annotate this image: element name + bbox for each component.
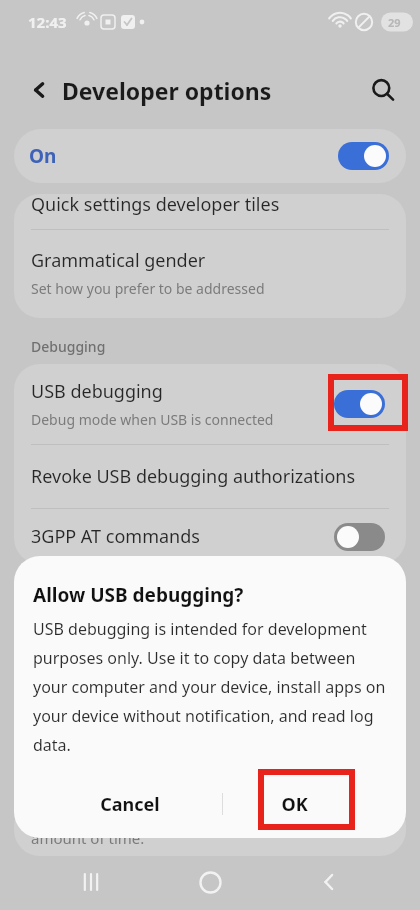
button[interactable]: Back xyxy=(301,854,357,910)
button[interactable]: OK xyxy=(214,776,374,832)
staticText: Grammatical gender xyxy=(31,248,206,273)
button[interactable]: Revoke USB debugging authorizations xyxy=(14,445,406,508)
button[interactable]: Back xyxy=(20,70,60,110)
staticText: Debug mode when USB is connected xyxy=(31,410,274,429)
staticText: Allow USB debugging? xyxy=(33,582,244,608)
button[interactable]: Cancel xyxy=(50,776,210,832)
staticText: Cancel xyxy=(100,792,160,817)
staticText: Developer options xyxy=(62,75,272,106)
staticText: OK xyxy=(281,792,308,817)
staticText: 29 xyxy=(388,15,401,30)
button[interactable]: Search xyxy=(362,69,404,111)
button[interactable]: On xyxy=(14,129,406,183)
staticText: USB debugging xyxy=(31,379,163,404)
staticText: Debugging xyxy=(31,337,106,356)
button[interactable]: 3GPP AT commands xyxy=(14,509,406,564)
staticText: Revoke USB debugging authorizations xyxy=(31,464,356,489)
button[interactable]: USB debugging xyxy=(14,364,406,444)
button[interactable]: Home xyxy=(182,854,238,910)
button[interactable]: Recents xyxy=(63,854,119,910)
staticText: On xyxy=(29,143,57,169)
staticText: Set how you prefer to be addressed xyxy=(31,279,265,298)
button[interactable]: Grammatical gender xyxy=(14,230,406,318)
staticText: 12:43 xyxy=(28,12,67,32)
staticText: amount of time. xyxy=(31,828,145,848)
staticText: 3GPP AT commands xyxy=(31,524,200,549)
staticText: Quick settings developer tiles xyxy=(31,194,280,217)
staticText: USB debugging is intended for developmen… xyxy=(33,618,393,755)
